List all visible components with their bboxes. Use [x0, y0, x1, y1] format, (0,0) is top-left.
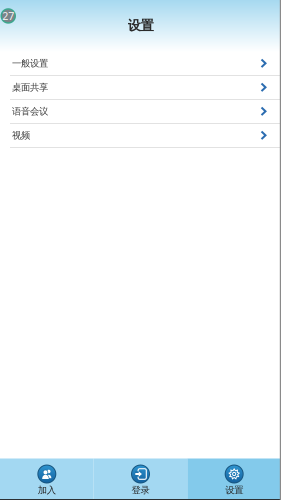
staticText: 加入: [38, 484, 56, 496]
staticText: 语音会议: [12, 106, 48, 117]
staticText: 设置: [127, 17, 153, 34]
staticText: 登录: [131, 484, 149, 496]
staticText: 27: [2, 9, 14, 23]
button[interactable]: 登录: [94, 458, 187, 500]
button[interactable]: 加入: [0, 458, 94, 500]
staticText: 桌面共享: [12, 82, 48, 93]
staticText: 一般设置: [12, 58, 48, 69]
staticText: 设置: [225, 484, 243, 496]
button[interactable]: 一般设置: [0, 52, 281, 75]
button[interactable]: 语音会议: [0, 100, 281, 123]
button[interactable]: 设置: [187, 458, 281, 500]
button[interactable]: 桌面共享: [0, 76, 281, 99]
staticText: 视频: [12, 130, 30, 141]
button[interactable]: 视频: [0, 124, 281, 147]
